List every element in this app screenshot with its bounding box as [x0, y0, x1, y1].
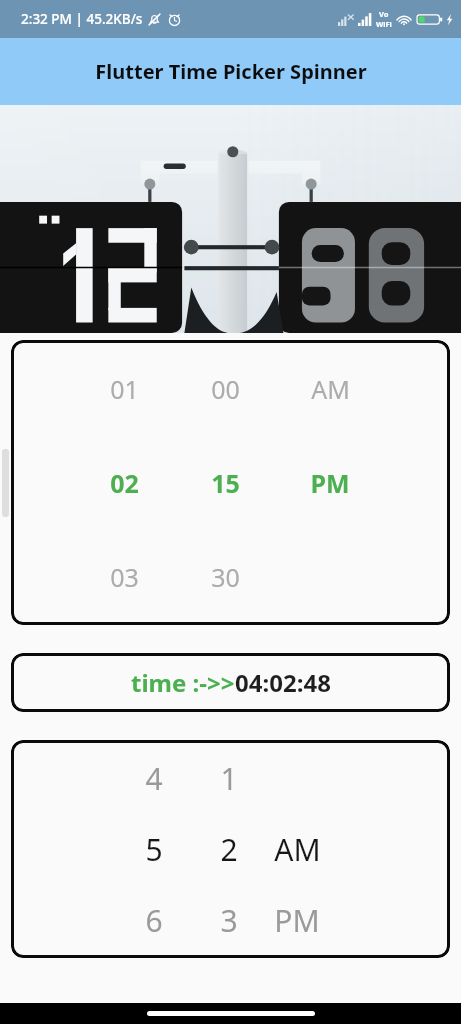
staticText: 01 [110, 372, 139, 406]
staticText: 30 [211, 560, 240, 594]
staticText: 6 [145, 900, 163, 941]
button[interactable]: 00 [187, 342, 263, 624]
staticText: 03 [110, 560, 139, 594]
staticText: AM [274, 829, 321, 870]
staticText: 1 [220, 758, 238, 799]
button[interactable]: 4 [116, 743, 192, 956]
staticText: 2:32 PM | 45.2KB/s [21, 10, 143, 28]
staticText: time :->> [131, 666, 235, 699]
staticText: 02 [110, 466, 139, 500]
staticText: PM [274, 900, 320, 941]
button[interactable]: time :->> [11, 653, 450, 712]
staticText: 3 [220, 900, 238, 941]
staticText: 4 [145, 758, 163, 799]
staticText: 2 [220, 829, 238, 870]
staticText: Flutter Time Picker Spinner [95, 58, 367, 85]
button[interactable]: 01 [86, 342, 162, 624]
staticText: 04:02:48 [235, 666, 331, 699]
staticText: 15 [211, 466, 240, 500]
staticText: WiFi [376, 19, 392, 29]
button[interactable]: AM [259, 743, 335, 956]
button[interactable]: 1 [191, 743, 267, 956]
button[interactable]: AM [292, 342, 368, 624]
staticText: 5 [145, 829, 163, 870]
staticText: Vo [379, 9, 389, 19]
staticText: AM [311, 372, 350, 406]
staticText: 00 [211, 372, 240, 406]
staticText: PM [310, 466, 350, 500]
